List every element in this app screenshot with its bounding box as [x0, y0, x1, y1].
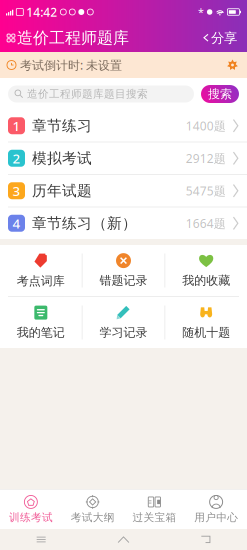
button[interactable]: 我的笔记 [0, 297, 82, 348]
button[interactable]: 返回 [165, 529, 247, 549]
staticText: 5475题 [186, 183, 226, 199]
staticText: 我的收藏 [182, 273, 230, 288]
button[interactable]: 考点词库 [0, 245, 82, 296]
staticText: 2912题 [186, 150, 226, 166]
staticText: 考点词库 [17, 274, 65, 288]
button[interactable]: 错题记录 [83, 245, 164, 296]
staticText: 搜索 [208, 87, 232, 101]
staticText: 学习记录 [99, 325, 147, 340]
staticText: 考试倒计时: 未设置 [20, 57, 122, 73]
button[interactable]: 搜索 [201, 85, 239, 103]
button[interactable]: 分享 [200, 26, 240, 50]
staticText: 分享 [211, 30, 237, 46]
staticText: 考试大纲 [71, 511, 115, 524]
staticText: 2 [12, 149, 20, 167]
staticText: 1 [12, 117, 20, 135]
button[interactable]: 设置 [225, 57, 240, 72]
staticText: 错题记录 [99, 273, 147, 288]
button[interactable]: 最近应用 [0, 529, 82, 549]
button[interactable]: 主页 [82, 529, 165, 549]
staticText: 1400题 [186, 118, 226, 134]
staticText: 历年试题 [32, 182, 92, 200]
button[interactable]: 随机十题 [165, 297, 247, 348]
staticText: 章节练习（新） [32, 214, 137, 232]
button[interactable]: 过关宝箱 [123, 490, 185, 529]
staticText: 训练考试 [9, 511, 53, 524]
staticText: 14:42 [26, 4, 57, 20]
staticText: 用户中心 [194, 511, 238, 524]
button[interactable]: 2 [0, 142, 247, 174]
button[interactable]: 学习记录 [83, 297, 164, 348]
staticText: 章节练习 [32, 117, 92, 135]
button[interactable]: 1 [0, 110, 247, 141]
staticText: 造价工程师题库 [17, 28, 129, 48]
button[interactable]: 训练考试 [0, 490, 62, 529]
staticText: * [198, 5, 204, 19]
staticText: 模拟考试 [32, 149, 92, 167]
staticText: 4 [12, 214, 20, 232]
staticText: 造价工程师题库题目搜索 [27, 87, 148, 100]
button[interactable]: 我的收藏 [165, 245, 247, 296]
staticText: 随机十题 [182, 325, 230, 340]
staticText: 3 [12, 182, 20, 200]
button[interactable]: 3 [0, 175, 247, 206]
button[interactable]: 用户中心 [185, 490, 247, 529]
staticText: 我的笔记 [17, 325, 65, 340]
button[interactable]: 考试大纲 [62, 490, 124, 529]
staticText: 过关宝箱 [132, 511, 176, 524]
staticText: 1664题 [186, 215, 226, 231]
button[interactable]: 4 [0, 207, 247, 239]
